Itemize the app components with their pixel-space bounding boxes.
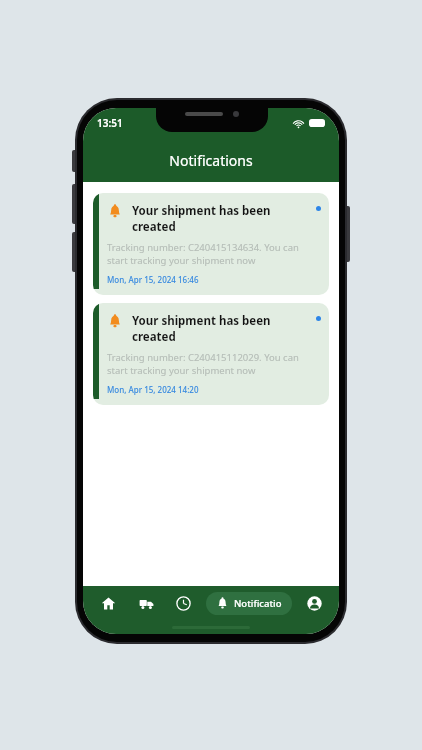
staticText: Your shipment has been created: [132, 203, 310, 234]
staticText: Mon, Apr 15, 2024 14:20: [107, 384, 199, 395]
button[interactable]: Notificatio: [206, 592, 292, 615]
button[interactable]: Your shipment has been created: [93, 193, 329, 295]
staticText: Your shipment has been created: [132, 313, 310, 344]
staticText: Tracking number: C240415112029. You can …: [107, 351, 321, 377]
button[interactable]: Your shipment has been created: [93, 303, 329, 405]
button[interactable]: Profile: [299, 588, 329, 618]
staticText: Tracking number: C240415134634. You can …: [107, 241, 321, 267]
staticText: 13:51: [97, 116, 123, 130]
button[interactable]: Shipments: [131, 588, 161, 618]
staticText: Notificatio: [234, 597, 282, 610]
staticText: Mon, Apr 15, 2024 16:46: [107, 274, 199, 285]
button[interactable]: Home: [93, 588, 123, 618]
staticText: Notifications: [169, 151, 253, 170]
button[interactable]: History: [168, 588, 198, 618]
